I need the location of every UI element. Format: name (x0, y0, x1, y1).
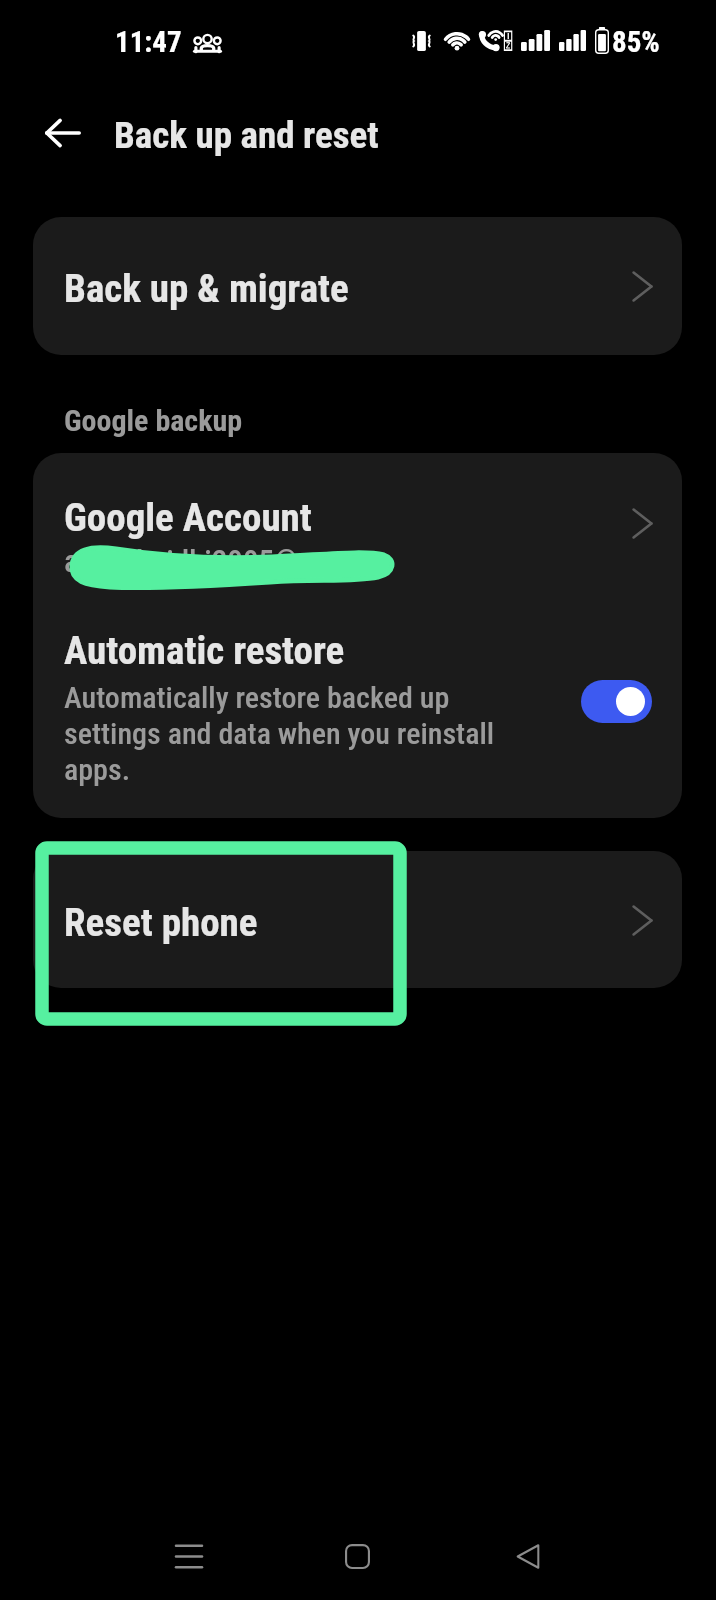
staticText: Google Account (64, 495, 312, 541)
button[interactable]: Back up & migrate (33, 217, 682, 355)
button[interactable]: Home (317, 1516, 397, 1596)
staticText: 85% (612, 25, 660, 59)
staticText: Automatic restore (64, 628, 345, 674)
staticText: Automatically restore backed up settings… (64, 680, 495, 787)
button[interactable]: Recent apps (149, 1516, 229, 1596)
button[interactable]: Back (30, 100, 96, 166)
button[interactable]: Automatic restore (33, 608, 682, 818)
button[interactable]: Reset phone (33, 851, 682, 988)
staticText: Reset phone (64, 900, 258, 946)
button[interactable]: Back (488, 1516, 568, 1596)
staticText: aayushnidhi2005@gm (64, 543, 337, 579)
staticText: Google backup (64, 403, 243, 438)
staticText: Back up & migrate (64, 266, 349, 312)
staticText: 11:47 (115, 25, 182, 59)
button[interactable]: Automatic restore (581, 680, 652, 723)
button[interactable]: Google Account (33, 453, 682, 593)
staticText: Back up and reset (114, 114, 379, 157)
